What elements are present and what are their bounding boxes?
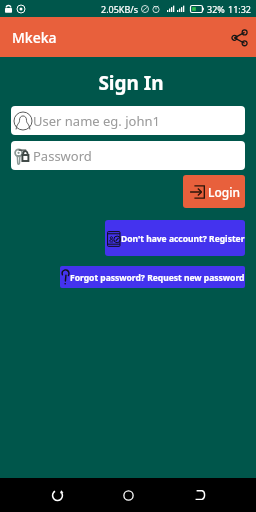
button[interactable]: Share	[225, 23, 253, 51]
button[interactable]: Password	[11, 141, 245, 170]
staticText: Don't have account? Register	[121, 233, 245, 245]
staticText: Sign In	[6, 70, 256, 96]
button[interactable]: Recents	[184, 478, 218, 512]
staticText: Login	[208, 184, 240, 200]
staticText: User name eg. john1	[33, 112, 160, 130]
staticText: 32%	[207, 3, 225, 15]
staticText: Mkeka	[12, 28, 57, 47]
button[interactable]: Don't have account? Register	[105, 220, 245, 256]
button[interactable]: Forgot password? Request new password	[60, 266, 245, 288]
staticText: Forgot password? Request new password	[70, 272, 245, 284]
staticText: Password	[33, 147, 92, 165]
staticText: 11:32	[228, 3, 252, 15]
button[interactable]: Back	[39, 478, 73, 512]
button[interactable]: Login	[183, 175, 245, 208]
button[interactable]: User name eg. john1	[11, 106, 245, 135]
staticText: 2.05KB/s	[101, 3, 138, 15]
button[interactable]: Home	[111, 478, 145, 512]
